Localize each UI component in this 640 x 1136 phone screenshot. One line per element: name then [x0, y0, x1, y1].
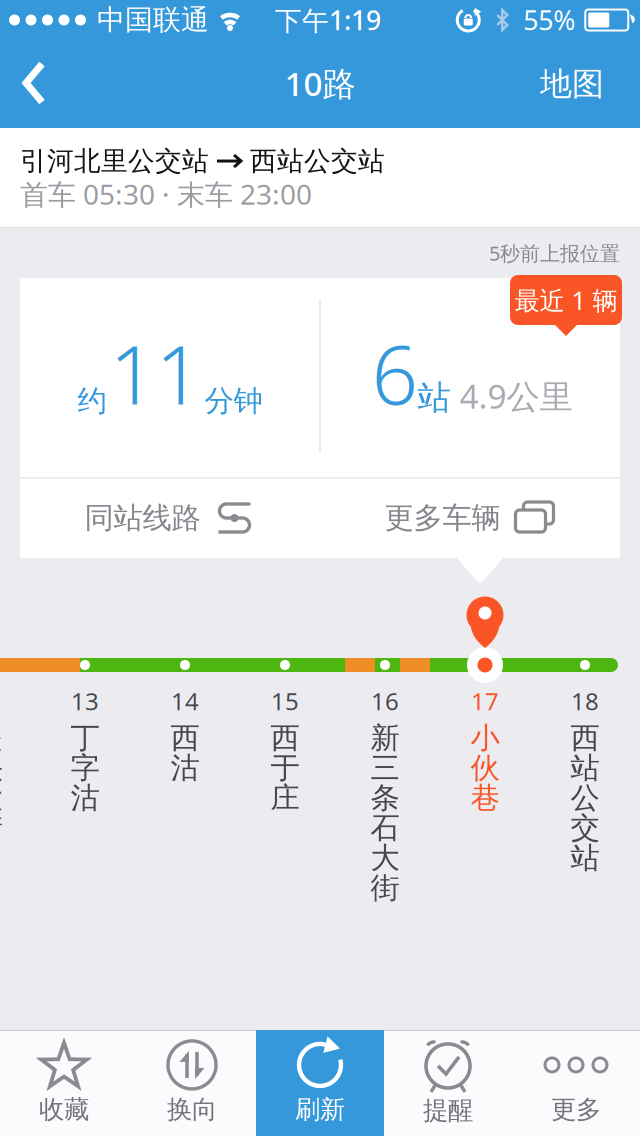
button[interactable]: 更多	[512, 1030, 640, 1136]
staticText: 石	[370, 810, 399, 846]
staticText: 5秒前上报位置	[489, 240, 620, 266]
staticText: 西	[570, 720, 599, 756]
staticText: 沽	[70, 780, 99, 816]
staticText: 巷	[470, 780, 499, 816]
staticText: 更多	[551, 1094, 601, 1125]
staticText: 街	[370, 870, 399, 906]
staticText: 17	[471, 685, 499, 717]
staticText: 下午1:19	[275, 2, 381, 38]
staticText: 换向	[167, 1094, 217, 1125]
staticText: 西	[170, 720, 199, 756]
button[interactable]: 刷新	[256, 1030, 384, 1136]
staticText: 同站线路	[84, 500, 200, 536]
staticText: 公	[570, 780, 599, 816]
staticText: 三	[370, 750, 399, 786]
staticText: 约	[77, 383, 106, 419]
button[interactable]: 地图	[522, 40, 622, 128]
staticText: 刷新	[295, 1094, 345, 1125]
staticText: 11	[109, 319, 201, 427]
staticText: 15	[271, 685, 299, 717]
staticText: 头	[0, 750, 2, 786]
staticText: 堤	[0, 720, 2, 756]
staticText: 站	[570, 750, 599, 786]
staticText: 55%	[523, 2, 575, 38]
staticText: 伙	[470, 750, 499, 786]
staticText: 沽	[170, 750, 199, 786]
button[interactable]: 提醒	[384, 1030, 512, 1136]
staticText: 14	[171, 685, 199, 717]
staticText: 大	[370, 840, 399, 876]
staticText: 西站公交站	[250, 145, 385, 177]
staticText: 站	[570, 840, 599, 876]
staticText: 丁	[70, 720, 99, 756]
staticText: 交	[570, 810, 599, 846]
staticText: 13	[71, 685, 99, 717]
staticText: 地图	[540, 64, 604, 104]
button[interactable]: Back	[0, 40, 70, 128]
staticText: 西	[270, 720, 299, 756]
staticText: 小	[470, 720, 499, 756]
staticText: 18	[571, 685, 599, 717]
staticText: 中国联通	[97, 3, 209, 37]
staticText: 首车 05:30 · 末车 23:00	[20, 175, 312, 213]
staticText: 引河北里公交站	[20, 145, 209, 177]
staticText: 10路	[284, 61, 355, 105]
staticText: 最近 1 辆	[514, 283, 617, 317]
staticText: 6	[371, 319, 417, 427]
staticText: 4.9公里	[450, 374, 572, 418]
staticText: 庄	[270, 780, 299, 816]
button[interactable]: 更多车辆	[320, 478, 620, 557]
staticText: 分钟	[204, 383, 262, 419]
staticText: 于	[270, 750, 299, 786]
button[interactable]: 同站线路	[20, 478, 320, 557]
staticText: 街	[0, 810, 2, 846]
button[interactable]: 收藏	[0, 1030, 128, 1136]
staticText: 大	[0, 780, 2, 816]
staticText: 收藏	[39, 1094, 89, 1125]
staticText: 提醒	[423, 1095, 473, 1126]
staticText: 条	[370, 780, 399, 816]
button[interactable]: 换向	[128, 1030, 256, 1136]
staticText: 16	[371, 685, 399, 717]
staticText: 更多车辆	[384, 500, 500, 536]
staticText: 字	[70, 750, 99, 786]
staticText: 新	[370, 720, 399, 756]
staticText: 站	[417, 377, 450, 418]
